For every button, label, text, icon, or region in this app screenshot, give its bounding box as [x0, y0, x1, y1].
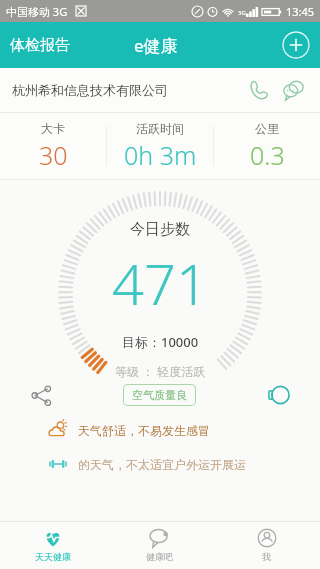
button[interactable]: 我 — [213, 521, 320, 569]
staticText: 健康吧 — [146, 551, 173, 562]
staticText: 13:45 — [286, 4, 315, 19]
button[interactable]: 的天气，不太适宜户外运开展运 — [48, 454, 320, 474]
button[interactable]: 体检报告 — [0, 28, 80, 63]
staticText: 0.3 — [250, 138, 285, 172]
staticText: 3G — [238, 9, 246, 17]
staticText: 我 — [262, 551, 271, 562]
staticText: 中国移动 3G — [6, 4, 68, 19]
staticText: 天气舒适，不易发生感冒 — [78, 423, 210, 438]
button[interactable]: Device — [262, 378, 296, 412]
button[interactable]: Add — [282, 31, 310, 59]
staticText: 大卡 — [41, 121, 65, 136]
button[interactable]: Call — [244, 75, 274, 105]
staticText: 的天气，不太适宜户外运开展运 — [78, 457, 246, 472]
staticText: 公里 — [255, 121, 279, 136]
staticText: 空气质量良 — [132, 388, 187, 402]
button[interactable]: 大卡 — [0, 117, 106, 176]
staticText: 活跃时间 — [136, 121, 184, 136]
button[interactable]: 天气舒适，不易发生感冒 — [48, 420, 320, 440]
staticText: 30 — [39, 138, 68, 172]
staticText: e健康 — [134, 34, 178, 57]
button[interactable]: Messages — [278, 75, 308, 105]
staticText: 等级 ： 轻度活跃 — [115, 363, 206, 379]
staticText: 0h 3m — [124, 138, 197, 172]
button[interactable]: 公里 — [214, 117, 320, 176]
button[interactable]: 天天健康 — [0, 521, 106, 569]
button[interactable]: 健康吧 — [106, 521, 213, 569]
staticText: 471 — [112, 245, 208, 321]
staticText: 体检报告 — [10, 36, 70, 55]
staticText: 天天健康 — [35, 551, 71, 562]
staticText: 目标：10000 — [122, 333, 199, 351]
button[interactable]: Share — [24, 378, 58, 412]
staticText: 杭州希和信息技术有限公司 — [12, 82, 244, 98]
staticText: 今日步数 — [130, 220, 190, 239]
button[interactable]: 空气质量良 — [123, 384, 196, 406]
button[interactable]: 活跃时间 — [107, 117, 213, 176]
